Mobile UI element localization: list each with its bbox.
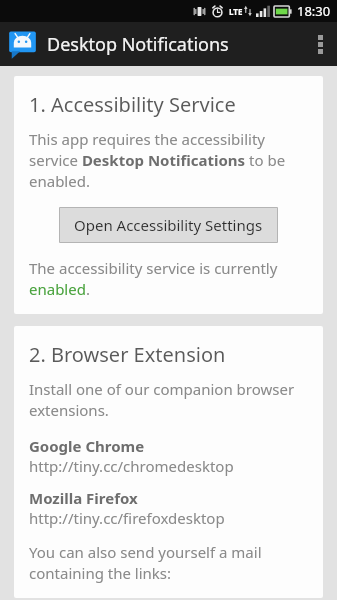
staticText: 1. Accessibility Service <box>29 91 236 118</box>
staticText: Install one of our companion browser ext… <box>29 379 308 421</box>
staticText: Google Chrome <box>29 436 145 456</box>
staticText: 18:30 <box>297 2 331 20</box>
staticText: The accessibility service is currently e… <box>29 258 308 300</box>
button[interactable]: More options <box>303 22 337 66</box>
staticText: This app requires the accessibility serv… <box>29 129 308 192</box>
button[interactable]: Open Accessibility Settings <box>60 208 277 242</box>
staticText: You can also send yourself a mail contai… <box>29 542 308 584</box>
staticText: http://tiny.cc/firefoxdesktop <box>29 508 225 528</box>
staticText: LTE <box>229 6 243 17</box>
staticText: 2. Browser Extension <box>29 341 226 368</box>
button[interactable]: Google Chrome <box>29 436 308 476</box>
button[interactable]: Mozilla Firefox <box>29 488 308 528</box>
staticText: Desktop Notifications <box>47 32 229 57</box>
staticText: Open Accessibility Settings <box>74 215 263 235</box>
staticText: http://tiny.cc/chromedesktop <box>29 456 234 476</box>
staticText: Mozilla Firefox <box>29 488 138 508</box>
